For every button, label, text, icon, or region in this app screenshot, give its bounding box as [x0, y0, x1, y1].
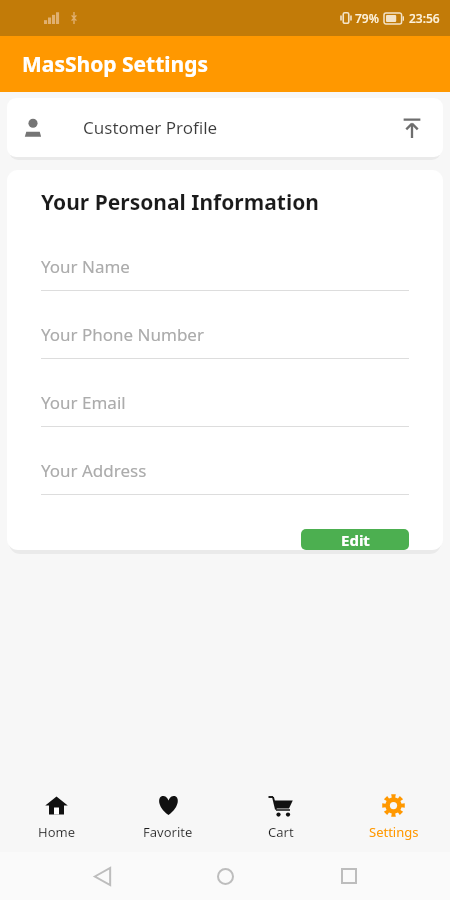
staticText: Your Personal Information [41, 188, 319, 217]
button[interactable]: Your Address [41, 447, 409, 515]
button[interactable]: Edit [301, 529, 409, 550]
staticText: Cart [268, 823, 294, 841]
button[interactable]: Home [203, 854, 247, 898]
button[interactable]: Upload profile picture [395, 111, 429, 145]
button[interactable]: Your Phone Number [41, 311, 409, 379]
staticText: 79% [355, 10, 379, 26]
button[interactable]: Cart [224, 782, 337, 852]
staticText: Edit [341, 530, 370, 550]
staticText: Your Phone Number [41, 323, 204, 346]
button[interactable]: Favorite [112, 782, 224, 852]
staticText: Your Address [41, 459, 147, 482]
staticText: 23:56 [409, 10, 440, 26]
button[interactable]: Recent apps [327, 854, 371, 898]
button[interactable]: Your Email [41, 379, 409, 447]
button[interactable]: Home [0, 782, 112, 852]
button[interactable]: Back [80, 854, 124, 898]
staticText: MasShop Settings [22, 50, 209, 79]
staticText: Favorite [143, 823, 193, 841]
button[interactable]: Customer Profile [7, 98, 443, 157]
staticText: Your Email [41, 391, 126, 414]
button[interactable]: Your Name [41, 243, 409, 311]
staticText: Customer Profile [83, 116, 218, 139]
staticText: Settings [369, 823, 419, 841]
button[interactable]: Settings [337, 782, 450, 852]
staticText: Home [38, 823, 75, 841]
staticText: Your Name [41, 255, 130, 278]
